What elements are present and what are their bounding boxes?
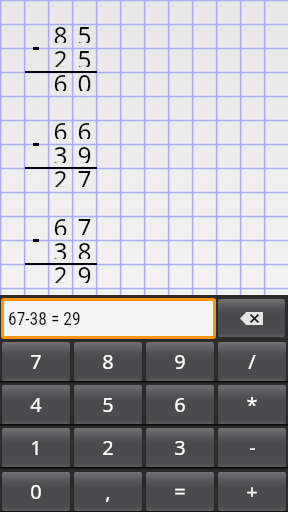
staticText: 5 xyxy=(102,391,114,418)
staticText: 2 xyxy=(102,434,114,461)
button[interactable]: 0 xyxy=(2,472,70,511)
button[interactable]: 67-38 = 29 xyxy=(4,301,213,336)
staticText: 9 xyxy=(77,139,92,163)
button[interactable]: Backspace xyxy=(218,299,285,337)
staticText: 1 xyxy=(30,434,42,461)
staticText: * xyxy=(246,391,258,418)
staticText: 7 xyxy=(77,163,92,187)
staticText: 2 xyxy=(53,163,68,187)
button[interactable]: 5 xyxy=(74,385,142,424)
staticText: 8 xyxy=(53,19,68,43)
button[interactable]: / xyxy=(218,342,286,381)
staticText: 3 xyxy=(53,139,68,163)
button[interactable]: = xyxy=(146,472,214,511)
staticText: = xyxy=(174,478,186,505)
staticText: 2 xyxy=(53,43,68,67)
button[interactable]: 4 xyxy=(2,385,70,424)
staticText: 67-38 = 29 xyxy=(8,309,81,330)
staticText: 4 xyxy=(30,391,42,418)
staticText: 6 xyxy=(77,115,92,139)
staticText: 6 xyxy=(53,115,68,139)
staticText: 6 xyxy=(53,211,68,235)
button[interactable]: 6 xyxy=(146,385,214,424)
button[interactable]: 3 xyxy=(146,428,214,467)
staticText: 9 xyxy=(174,348,186,375)
staticText: 5 xyxy=(77,19,92,43)
button[interactable]: , xyxy=(74,472,142,511)
staticText: 2 xyxy=(53,259,68,283)
staticText: - xyxy=(249,434,256,461)
button[interactable]: 1 xyxy=(2,428,70,467)
button[interactable]: 9 xyxy=(146,342,214,381)
staticText: / xyxy=(248,348,256,375)
staticText: 3 xyxy=(53,235,68,259)
staticText: + xyxy=(246,478,258,505)
staticText: 5 xyxy=(77,43,92,67)
button[interactable]: 8 xyxy=(74,342,142,381)
staticText: , xyxy=(105,478,111,505)
staticText: 8 xyxy=(77,235,92,259)
button[interactable]: 2 xyxy=(74,428,142,467)
staticText: 9 xyxy=(77,259,92,283)
staticText: 8 xyxy=(102,348,114,375)
button[interactable]: 7 xyxy=(2,342,70,381)
staticText: 6 xyxy=(174,391,186,418)
staticText: 7 xyxy=(77,211,92,235)
button[interactable]: + xyxy=(218,472,286,511)
staticText: 6 xyxy=(53,67,68,91)
button[interactable]: - xyxy=(218,428,286,467)
button[interactable]: * xyxy=(218,385,286,424)
staticText: 3 xyxy=(174,434,186,461)
staticText: 0 xyxy=(30,478,42,505)
staticText: 7 xyxy=(30,348,42,375)
staticText: 0 xyxy=(77,67,92,91)
